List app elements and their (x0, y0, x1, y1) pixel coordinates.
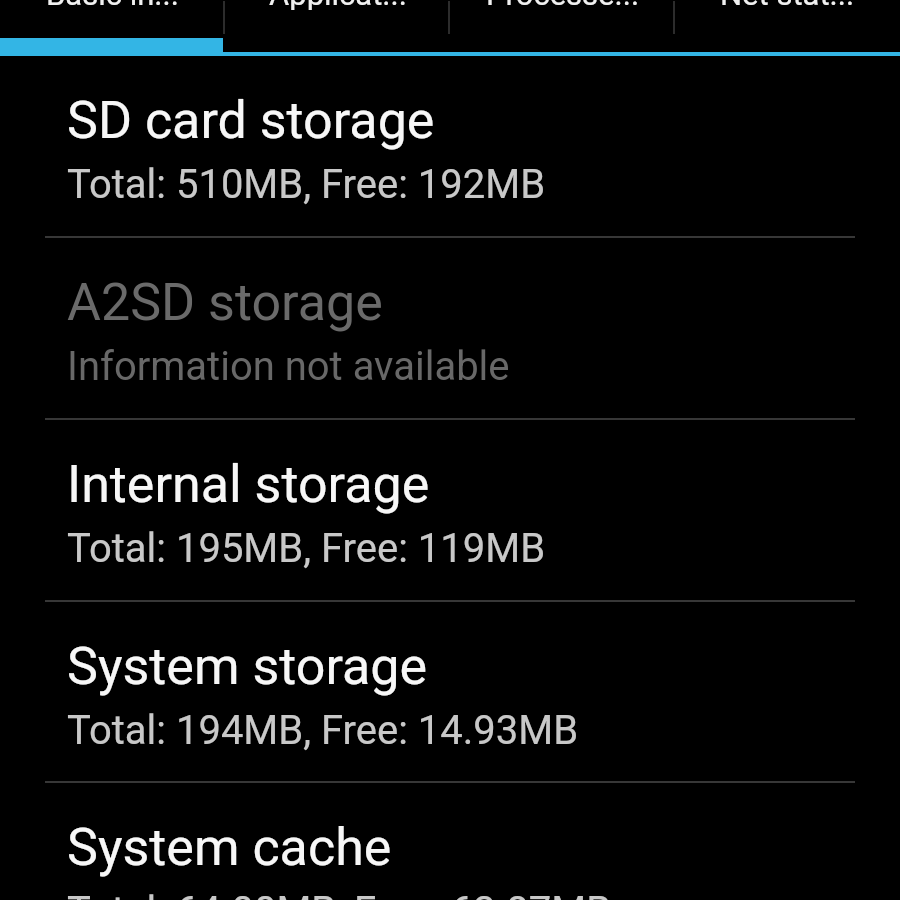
button[interactable]: Processe... (450, 0, 675, 34)
staticText: A2SD storage (67, 272, 383, 333)
button[interactable]: Applicat... (225, 0, 450, 34)
button[interactable]: Basic in... (0, 0, 225, 34)
button[interactable]: SD card storage (0, 56, 900, 236)
button[interactable]: System cache (0, 783, 900, 900)
button[interactable]: A2SD storage (0, 238, 900, 418)
staticText: Processe... (486, 0, 640, 10)
staticText: Basic in... (46, 0, 179, 10)
staticText: Information not available (67, 343, 510, 390)
staticText: Net stat... (720, 0, 855, 10)
button[interactable]: Internal storage (0, 420, 900, 600)
staticText: Total: 510MB, Free: 192MB (67, 161, 546, 208)
button[interactable]: System storage (0, 602, 900, 781)
staticText: Applicat... (269, 0, 407, 10)
staticText: Total: 195MB, Free: 119MB (67, 525, 546, 572)
staticText: System storage (67, 636, 428, 697)
button[interactable]: Net stat... (675, 0, 900, 34)
staticText: System cache (67, 817, 392, 878)
staticText: Internal storage (67, 454, 430, 515)
staticText: Total: 194MB, Free: 14.93MB (67, 707, 579, 754)
staticText: Total: 64.00MB, Free: 63.87MB (67, 888, 612, 900)
staticText: SD card storage (67, 90, 435, 151)
